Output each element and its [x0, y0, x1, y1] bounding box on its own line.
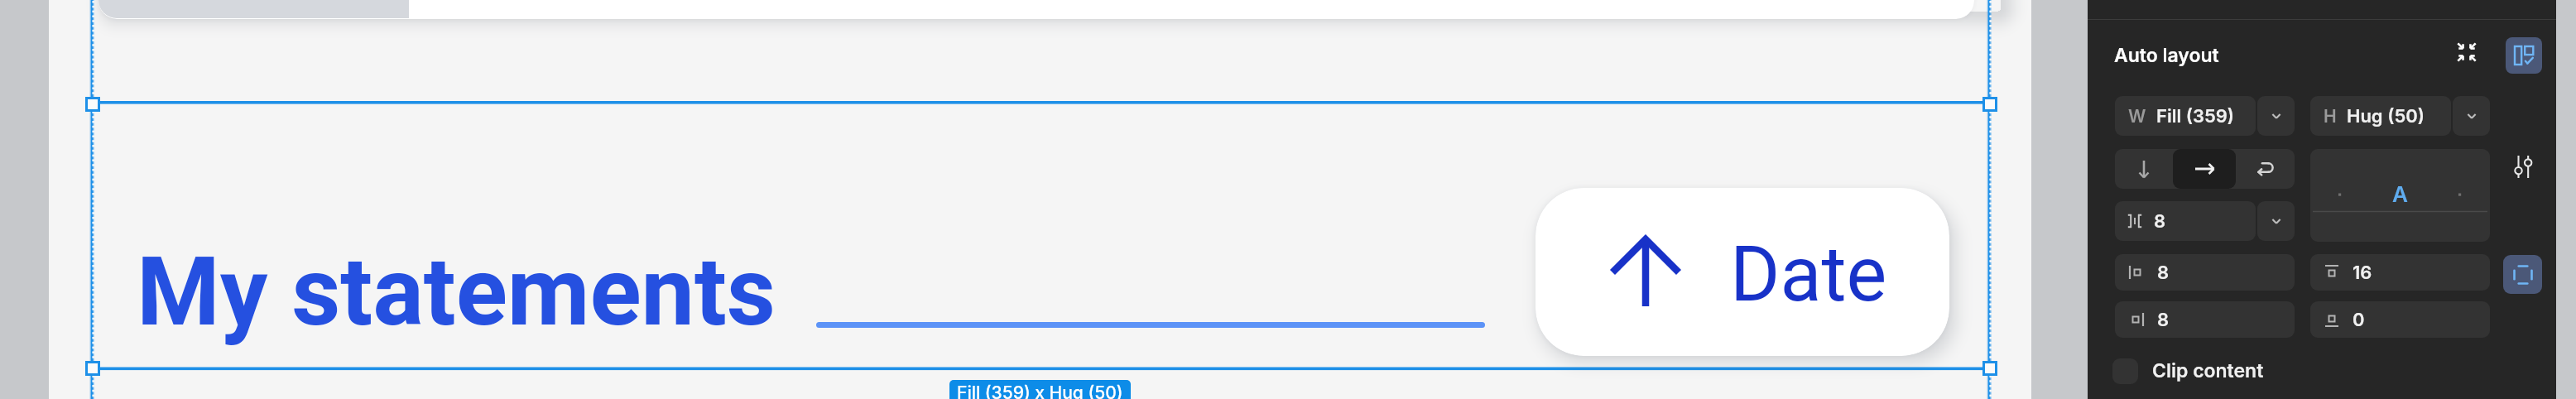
staticText: 8 [2157, 262, 2170, 284]
button[interactable]: 16 [2310, 254, 2490, 291]
staticText: 8 [2157, 309, 2170, 331]
staticText: Fill (359) [2156, 105, 2235, 127]
button[interactable]: Collapse [2452, 37, 2482, 67]
button[interactable]: Gap options [2257, 201, 2295, 241]
button[interactable]: Open W options [2257, 96, 2295, 136]
button[interactable]: Alignment [2310, 149, 2490, 242]
staticText: Fill (359) x Hug (50) [957, 382, 1123, 399]
button[interactable]: Horizontal layout [2173, 149, 2236, 189]
button[interactable]: Date [1536, 188, 1949, 356]
button[interactable]: Open H options [2453, 96, 2490, 136]
staticText: 16 [2353, 262, 2372, 284]
button[interactable]: H [2310, 96, 2451, 136]
staticText: H [2324, 106, 2337, 127]
staticText: My statements [137, 236, 776, 348]
staticText: 0 [2353, 309, 2365, 331]
button[interactable]: Wrap [2236, 149, 2295, 189]
staticText: Date [1730, 230, 1887, 320]
staticText: Hug (50) [2347, 105, 2425, 127]
button[interactable]: W [2115, 96, 2256, 136]
button[interactable]: Vertical layout [2115, 149, 2173, 189]
button[interactable]: 8 [2115, 301, 2295, 338]
button[interactable]: Independent padding [2503, 255, 2542, 294]
button[interactable]: 8 [2115, 254, 2295, 291]
staticText: A [2392, 181, 2408, 207]
staticText: Auto layout [2114, 44, 2219, 67]
staticText: W [2128, 106, 2146, 127]
button[interactable]: Advanced layout settings [2507, 151, 2539, 182]
button[interactable]: 0 [2310, 301, 2490, 338]
staticText: 8 [2154, 210, 2166, 233]
button[interactable]: Clip content [2112, 353, 2264, 389]
staticText: Clip content [2152, 359, 2264, 382]
button[interactable]: Auto layout panel [2506, 37, 2542, 74]
button[interactable]: 8 [2115, 201, 2256, 241]
